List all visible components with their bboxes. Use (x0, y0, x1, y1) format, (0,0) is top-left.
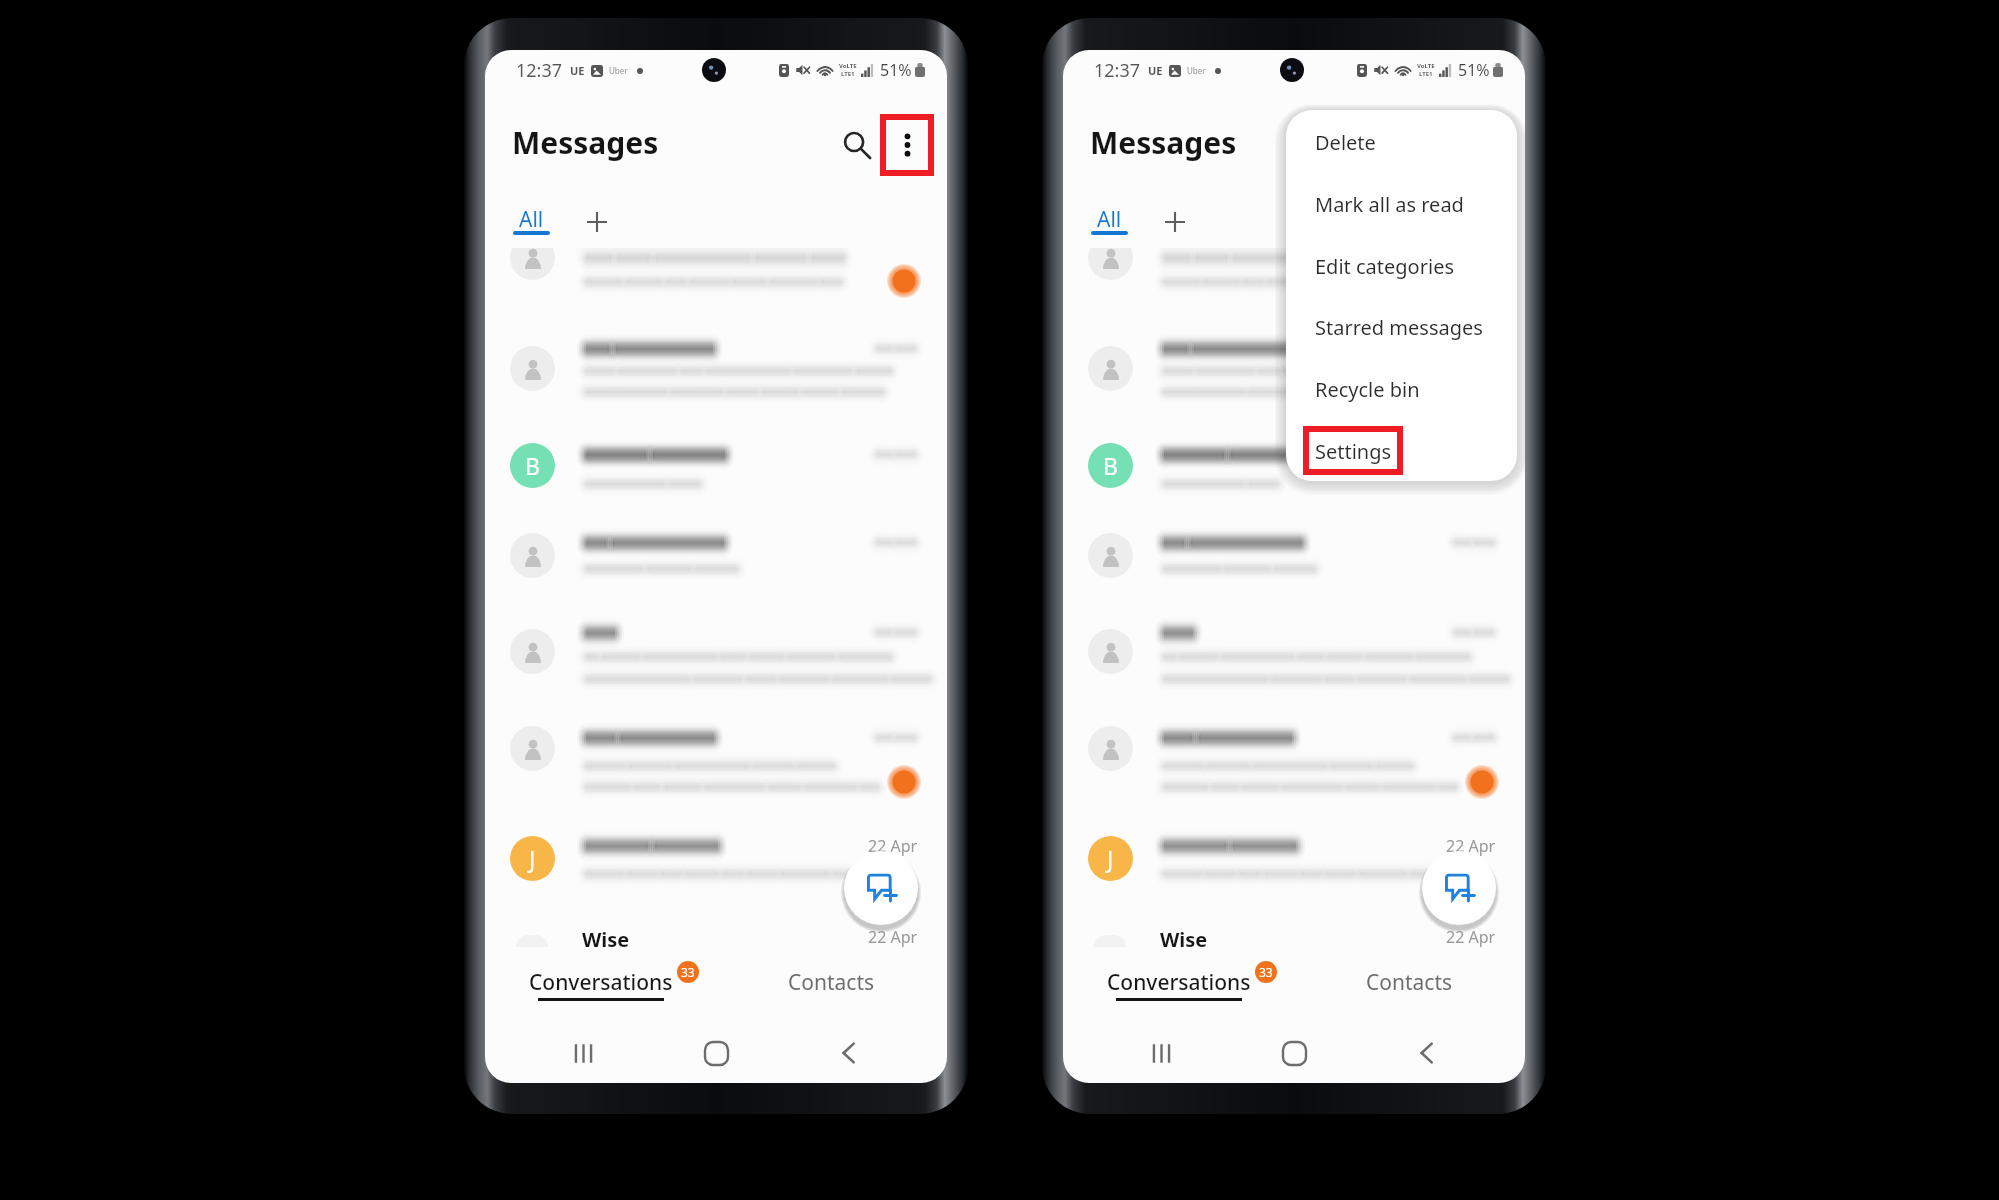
button[interactable]: Mark all as read (1286, 182, 1517, 226)
button[interactable]: Back (1402, 1028, 1452, 1078)
staticText: Settings (1315, 438, 1392, 465)
staticText: Delete (1315, 129, 1376, 156)
button[interactable]: Conversations (1063, 968, 1294, 1020)
button[interactable]: Starred messages (1286, 305, 1517, 349)
button[interactable] (1063, 608, 1525, 698)
button[interactable]: More options (883, 121, 931, 169)
button[interactable]: Conversations (485, 968, 716, 1020)
button[interactable]: J (485, 815, 947, 905)
button[interactable]: Recycle bin (1286, 367, 1517, 411)
button[interactable]: B (1063, 422, 1525, 512)
staticText: UE (1148, 63, 1163, 78)
button[interactable] (485, 325, 947, 415)
button[interactable] (485, 705, 947, 795)
button[interactable]: Back (824, 1028, 874, 1078)
staticText: VoLTE (839, 62, 857, 70)
button[interactable]: Settings (1286, 429, 1517, 473)
button[interactable]: Add category (575, 200, 619, 244)
staticText: J (529, 843, 536, 874)
button[interactable] (485, 512, 947, 602)
staticText: Mark all as read (1315, 191, 1464, 218)
staticText: Wise (582, 926, 630, 953)
button[interactable]: Contacts (1294, 968, 1525, 1020)
button[interactable]: All (509, 205, 553, 237)
staticText: Uber (1187, 65, 1206, 76)
staticText: LTE1 (841, 70, 855, 78)
staticText: 33 (681, 964, 695, 980)
staticText: Conversations (1107, 968, 1251, 997)
button[interactable]: B (485, 422, 947, 512)
staticText: LTE1 (1419, 70, 1433, 78)
staticText: 33 (1259, 964, 1273, 980)
staticText: Edit categories (1315, 253, 1454, 280)
button[interactable]: Recents (1136, 1028, 1186, 1078)
staticText: 51% (880, 59, 912, 81)
staticText: All (1097, 205, 1122, 231)
staticText: 22 Apr (868, 926, 918, 948)
button[interactable]: J (1063, 815, 1525, 905)
button[interactable]: Recents (558, 1028, 608, 1078)
button[interactable]: All (1087, 205, 1131, 237)
button[interactable]: New conversation (844, 851, 918, 925)
staticText: Contacts (1366, 968, 1453, 997)
button[interactable]: Edit categories (1286, 244, 1517, 288)
button[interactable] (1063, 248, 1525, 304)
button[interactable] (485, 248, 947, 304)
staticText: Uber (609, 65, 628, 76)
staticText: Wise (1160, 926, 1208, 953)
staticText: 12:37 (1094, 58, 1141, 83)
button[interactable]: New conversation (1422, 851, 1496, 925)
staticText: B (525, 450, 540, 481)
button[interactable] (1063, 512, 1525, 602)
staticText: Messages (512, 122, 659, 163)
staticText: UE (570, 63, 585, 78)
staticText: B (1103, 450, 1118, 481)
staticText: 22 Apr (1446, 926, 1496, 948)
staticText: All (519, 205, 544, 231)
staticText: J (1107, 843, 1114, 874)
staticText: Recycle bin (1315, 376, 1420, 403)
staticText: VoLTE (1417, 62, 1435, 70)
staticText: 22 Apr (868, 835, 918, 857)
staticText: 12:37 (516, 58, 563, 83)
button[interactable] (1063, 325, 1525, 415)
staticText: Starred messages (1315, 314, 1483, 341)
staticText: Contacts (788, 968, 875, 997)
button[interactable] (1063, 705, 1525, 795)
staticText: 51% (1458, 59, 1490, 81)
staticText: Conversations (529, 968, 673, 997)
button[interactable]: Delete (1286, 120, 1517, 164)
button[interactable]: Add category (1153, 200, 1197, 244)
button[interactable]: Home (691, 1028, 741, 1078)
button[interactable]: Contacts (716, 968, 947, 1020)
button[interactable]: Search (834, 121, 882, 169)
button[interactable] (485, 608, 947, 698)
staticText: 22 Apr (1446, 835, 1496, 857)
button[interactable]: Home (1269, 1028, 1319, 1078)
staticText: Messages (1090, 122, 1237, 163)
